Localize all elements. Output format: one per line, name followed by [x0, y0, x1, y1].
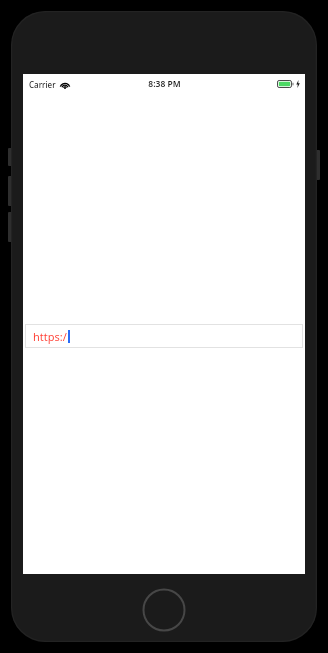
button[interactable]: Home [142, 588, 186, 632]
staticText: https:/ [33, 329, 67, 344]
staticText: 8:38 PM [148, 78, 181, 90]
staticText: Carrier [29, 79, 56, 90]
button[interactable]: https:/ [25, 324, 303, 348]
